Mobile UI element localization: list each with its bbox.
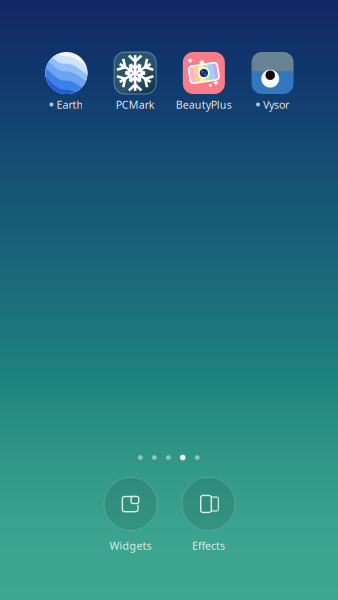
- staticText: Widgets: [110, 538, 152, 553]
- staticText: Earth: [56, 97, 83, 112]
- button[interactable]: BeautyPlus: [169, 54, 238, 116]
- button[interactable]: PCMark: [101, 54, 169, 116]
- button[interactable]: Earth: [32, 54, 101, 116]
- button[interactable]: Widgets: [92, 477, 170, 553]
- staticText: Vysor: [263, 97, 289, 112]
- staticText: BeautyPlus: [176, 97, 232, 112]
- staticText: PCMark: [116, 97, 155, 112]
- button[interactable]: Vysor: [238, 54, 307, 116]
- button[interactable]: Effects: [170, 477, 248, 553]
- staticText: Effects: [192, 538, 225, 553]
